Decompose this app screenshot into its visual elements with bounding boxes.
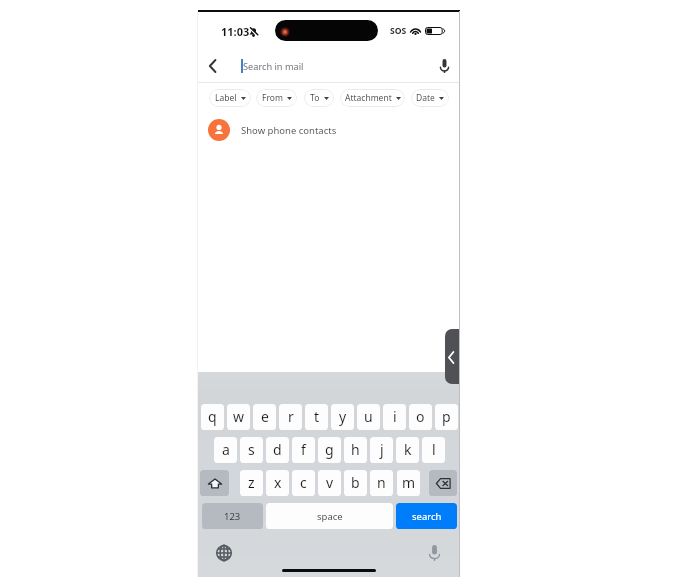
staticText: x	[274, 473, 282, 492]
staticText: a	[222, 440, 230, 459]
button[interactable]: i	[383, 404, 406, 430]
staticText: h	[351, 440, 360, 459]
button[interactable]: t	[305, 404, 328, 430]
button[interactable]: From	[256, 89, 297, 107]
staticText: space	[317, 510, 343, 523]
button[interactable]: Date	[411, 89, 449, 107]
button[interactable]: Back	[445, 329, 459, 384]
button[interactable]: o	[409, 404, 432, 430]
button[interactable]: n	[370, 470, 393, 496]
staticText: c	[300, 473, 307, 492]
button[interactable]: Dictate	[428, 544, 440, 561]
staticText: j	[380, 440, 384, 459]
staticText: Date	[416, 92, 435, 104]
staticText: i	[393, 407, 397, 426]
button[interactable]: 123	[202, 503, 263, 529]
staticText: d	[273, 440, 282, 459]
staticText: search	[412, 510, 442, 523]
button[interactable]: Change keyboard language	[216, 545, 232, 561]
staticText: q	[208, 407, 217, 426]
button[interactable]: m	[397, 470, 420, 496]
button[interactable]: b	[344, 470, 367, 496]
staticText: Search in mail	[243, 60, 304, 73]
staticText: To	[310, 92, 320, 104]
staticText: o	[416, 407, 425, 426]
button[interactable]: l	[422, 437, 445, 463]
staticText: f	[301, 440, 306, 459]
button[interactable]: Label	[209, 89, 251, 107]
button[interactable]: s	[240, 437, 263, 463]
staticText: Show phone contacts	[241, 124, 337, 137]
staticText: Label	[215, 92, 237, 104]
button[interactable]: Voice search	[433, 55, 455, 77]
staticText: u	[364, 407, 373, 426]
staticText: s	[248, 440, 255, 459]
staticText: z	[248, 473, 255, 492]
button[interactable]: Backspace	[429, 470, 457, 496]
staticText: p	[442, 407, 451, 426]
staticText: Attachment	[345, 92, 392, 104]
button[interactable]: Back	[199, 53, 225, 79]
staticText: g	[325, 440, 334, 459]
button[interactable]: Show phone contacts	[198, 118, 460, 142]
staticText: v	[326, 473, 334, 492]
button[interactable]: space	[266, 503, 393, 529]
staticText: e	[261, 407, 269, 426]
staticText: n	[377, 473, 386, 492]
button[interactable]: e	[253, 404, 276, 430]
staticText: y	[339, 407, 347, 426]
button[interactable]: j	[370, 437, 393, 463]
staticText: l	[432, 440, 436, 459]
staticText: w	[233, 407, 245, 426]
staticText: m	[402, 473, 416, 492]
button[interactable]: p	[435, 404, 458, 430]
staticText: b	[351, 473, 360, 492]
staticText: 11:03	[221, 24, 250, 39]
staticText: 123	[224, 510, 241, 523]
staticText: r	[288, 407, 294, 426]
button[interactable]: d	[266, 437, 289, 463]
button[interactable]: search	[396, 503, 457, 529]
staticText: t	[314, 407, 320, 426]
button[interactable]: w	[227, 404, 250, 430]
button[interactable]: c	[292, 470, 315, 496]
button[interactable]: u	[357, 404, 380, 430]
staticText: k	[404, 440, 412, 459]
button[interactable]: r	[279, 404, 302, 430]
staticText: From	[262, 92, 283, 104]
button[interactable]: q	[201, 404, 224, 430]
button[interactable]: To	[304, 89, 334, 107]
button[interactable]: v	[318, 470, 341, 496]
button[interactable]: a	[214, 437, 237, 463]
button[interactable]: x	[266, 470, 289, 496]
button[interactable]: g	[318, 437, 341, 463]
staticText: SOS	[390, 25, 407, 37]
button[interactable]: k	[396, 437, 419, 463]
button[interactable]: h	[344, 437, 367, 463]
button[interactable]: y	[331, 404, 354, 430]
button[interactable]: f	[292, 437, 315, 463]
button[interactable]: Shift	[200, 470, 229, 496]
button[interactable]: z	[240, 470, 263, 496]
button[interactable]: Attachment	[340, 89, 405, 107]
